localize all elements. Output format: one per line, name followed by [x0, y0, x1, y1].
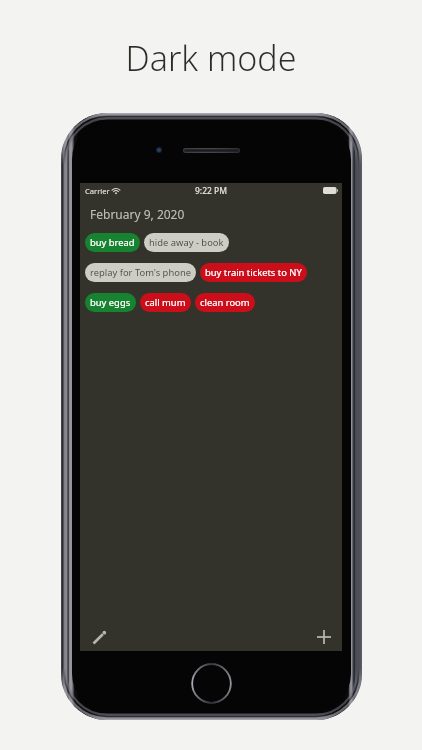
button[interactable]: clean room — [195, 293, 255, 312]
button[interactable]: buy bread — [85, 233, 140, 252]
button[interactable]: replay for Tom's phone — [85, 263, 196, 282]
staticText: buy bread — [90, 236, 135, 249]
button[interactable]: hide away - book — [144, 233, 229, 252]
staticText: February 9, 2020 — [90, 206, 185, 222]
staticText: 9:22 PM — [195, 185, 228, 197]
staticText: buy train tickets to NY — [205, 266, 302, 279]
button[interactable]: call mum — [140, 293, 191, 312]
staticText: replay for Tom's phone — [90, 266, 191, 279]
staticText: hide away - book — [149, 236, 224, 249]
button[interactable]: Add — [309, 622, 339, 652]
staticText: Carrier — [85, 186, 110, 196]
button[interactable]: buy eggs — [85, 293, 136, 312]
staticText: call mum — [145, 296, 186, 309]
button[interactable]: buy train tickets to NY — [200, 263, 307, 282]
staticText: Dark mode — [0, 35, 422, 81]
button[interactable]: Edit — [84, 622, 114, 652]
staticText: buy eggs — [90, 296, 131, 309]
staticText: clean room — [200, 296, 250, 309]
